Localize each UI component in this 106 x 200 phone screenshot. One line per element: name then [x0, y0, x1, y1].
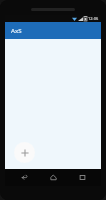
button[interactable]: Back: [14, 169, 34, 186]
button[interactable]: AxS: [5, 22, 101, 39]
button[interactable]: Home: [43, 169, 63, 186]
staticText: AxS: [11, 27, 22, 35]
button[interactable]: Add: [14, 142, 35, 163]
button[interactable]: Recent apps: [72, 169, 92, 186]
staticText: 12:06: [88, 16, 99, 21]
